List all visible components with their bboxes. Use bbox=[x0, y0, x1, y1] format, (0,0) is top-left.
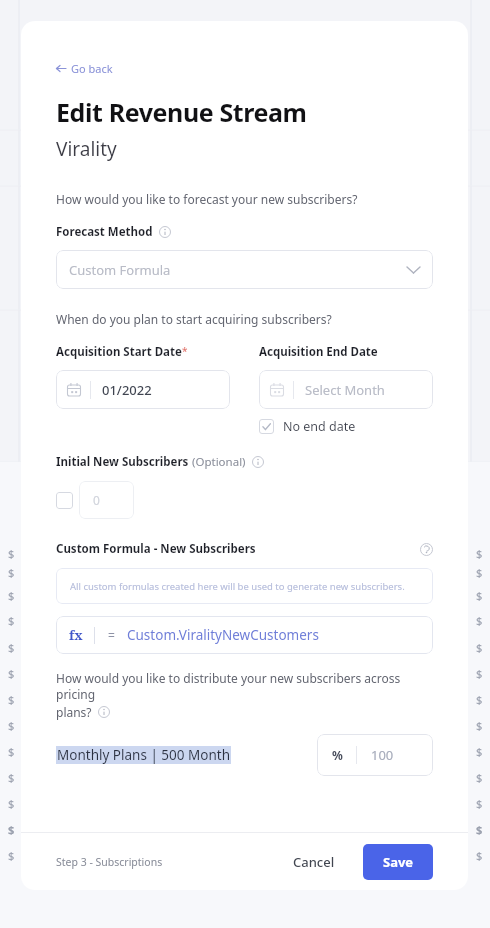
staticText: $ bbox=[476, 744, 483, 759]
staticText: When do you plan to start acquiring subs… bbox=[56, 311, 332, 327]
staticText: $ bbox=[476, 565, 483, 580]
staticText: All custom formulas created here will be… bbox=[70, 580, 405, 593]
staticText: No end date bbox=[283, 418, 356, 435]
staticText: $ bbox=[476, 822, 483, 837]
button[interactable]: Save bbox=[363, 844, 433, 880]
staticText: Custom.ViralityNewCustomers bbox=[127, 626, 319, 644]
staticText: $ bbox=[476, 666, 483, 681]
staticText: $ bbox=[8, 666, 15, 681]
button[interactable]: % bbox=[317, 734, 433, 776]
staticText: 01/2022 bbox=[102, 381, 152, 399]
button[interactable]: Monthly Plans | 500 Month bbox=[56, 746, 231, 764]
staticText: $ bbox=[8, 588, 15, 603]
staticText: $ bbox=[8, 613, 15, 628]
staticText: Virality bbox=[56, 136, 117, 162]
staticText: Save bbox=[383, 853, 414, 871]
button[interactable]: 0 bbox=[79, 481, 134, 519]
button[interactable]: Custom Formula bbox=[56, 250, 433, 289]
staticText: $ bbox=[8, 640, 15, 655]
staticText: = bbox=[108, 627, 115, 643]
button[interactable]: 01/2022 bbox=[56, 370, 230, 409]
button[interactable]: Enable initial new subscribers bbox=[56, 492, 73, 509]
staticText: (Optional) bbox=[192, 454, 246, 470]
staticText: Acquisition Start Date bbox=[56, 344, 182, 360]
staticText: $ bbox=[476, 848, 483, 863]
staticText: $ bbox=[476, 640, 483, 655]
staticText: $ bbox=[476, 796, 483, 811]
staticText: $ bbox=[476, 588, 483, 603]
button[interactable]: fx bbox=[56, 616, 433, 654]
staticText: $ bbox=[476, 692, 483, 707]
staticText: $ bbox=[476, 770, 483, 785]
staticText: plans? bbox=[56, 704, 92, 720]
staticText: How would you like to forecast your new … bbox=[56, 191, 358, 207]
staticText: Custom Formula - New Subscribers bbox=[56, 541, 420, 557]
staticText: $ bbox=[8, 565, 15, 580]
staticText: $ bbox=[476, 718, 483, 733]
button[interactable]: Cancel bbox=[283, 845, 345, 879]
staticText: $ bbox=[8, 796, 15, 811]
staticText: Step 3 - Subscriptions bbox=[56, 855, 283, 869]
staticText: * bbox=[182, 344, 188, 358]
staticText: Forecast Method bbox=[56, 224, 153, 240]
staticText: 0 bbox=[93, 492, 100, 508]
staticText: $ bbox=[8, 744, 15, 759]
staticText: Monthly Plans | 500 Month bbox=[57, 746, 230, 764]
staticText: Custom Formula bbox=[69, 261, 407, 279]
button[interactable]: Select Month bbox=[259, 370, 433, 409]
staticText: $ bbox=[476, 546, 483, 561]
staticText: How would you like to distribute your ne… bbox=[56, 670, 433, 702]
staticText: fx bbox=[69, 626, 83, 644]
staticText: $ bbox=[476, 613, 483, 628]
staticText: $ bbox=[8, 546, 15, 561]
staticText: Cancel bbox=[293, 853, 335, 871]
button[interactable]: Help bbox=[420, 543, 433, 556]
staticText: $ bbox=[8, 692, 15, 707]
staticText: Initial New Subscribers bbox=[56, 454, 192, 470]
staticText: Select Month bbox=[305, 381, 385, 399]
staticText: $ bbox=[8, 822, 15, 837]
button[interactable]: Go back bbox=[56, 59, 113, 78]
staticText: $ bbox=[8, 718, 15, 733]
staticText: Acquisition End Date bbox=[259, 344, 378, 360]
staticText: Go back bbox=[71, 61, 113, 76]
staticText: $ bbox=[8, 770, 15, 785]
staticText: $ bbox=[8, 848, 15, 863]
button[interactable]: No end date bbox=[259, 418, 356, 435]
staticText: 100 bbox=[371, 746, 394, 764]
staticText: % bbox=[332, 747, 343, 763]
staticText: Edit Revenue Stream bbox=[56, 95, 307, 129]
